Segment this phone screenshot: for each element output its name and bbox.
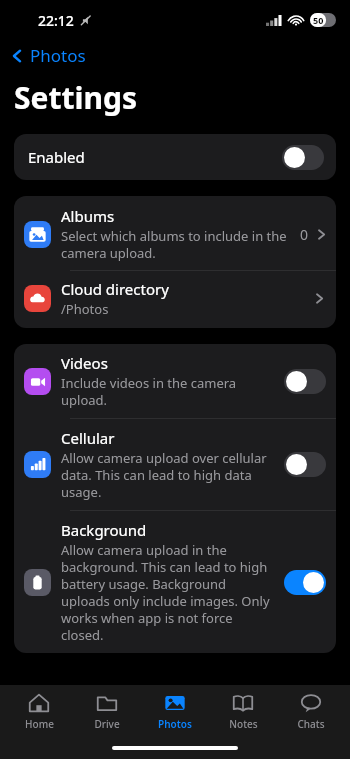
staticText: 0 — [300, 225, 309, 244]
staticText: 50 — [313, 14, 324, 26]
button[interactable]: Enabled — [14, 134, 336, 180]
staticText: Photos — [158, 717, 192, 731]
button[interactable]: Cellular — [14, 419, 336, 510]
staticText: Photos — [30, 44, 86, 67]
staticText: Videos — [61, 353, 108, 373]
button[interactable]: Off — [282, 145, 324, 170]
button[interactable]: Home — [10, 689, 68, 734]
staticText: Albums — [61, 206, 115, 226]
button[interactable]: Notes — [214, 689, 272, 734]
button[interactable]: Background — [14, 511, 336, 653]
staticText: /Photos — [61, 300, 109, 318]
staticText: Home — [25, 717, 54, 731]
button[interactable]: Videos — [14, 344, 336, 418]
staticText: Enabled — [28, 147, 85, 167]
staticText: Drive — [94, 717, 120, 731]
staticText: Cloud directory — [61, 279, 169, 299]
staticText: Allow camera upload over cellular data. … — [61, 449, 276, 501]
staticText: Notes — [229, 717, 258, 731]
button[interactable]: Off — [284, 369, 326, 394]
button[interactable]: On — [284, 570, 326, 595]
staticText: Allow camera upload in the background. T… — [61, 541, 276, 644]
button[interactable]: Photos — [146, 689, 204, 734]
button[interactable]: Drive — [78, 689, 136, 734]
staticText: Include videos in the camera upload. — [61, 374, 276, 409]
staticText: Select which albums to include in the ca… — [61, 227, 294, 262]
staticText: Cellular — [61, 428, 115, 448]
staticText: Background — [61, 520, 147, 540]
staticText: Settings — [14, 77, 137, 118]
staticText: Chats — [297, 717, 325, 731]
staticText: 22:12 — [38, 11, 74, 30]
button[interactable]: Chats — [282, 689, 340, 734]
button[interactable]: Albums — [14, 196, 336, 270]
button[interactable]: Cloud directory — [14, 271, 336, 328]
button[interactable]: Off — [284, 452, 326, 477]
button[interactable]: Photos — [0, 40, 96, 71]
